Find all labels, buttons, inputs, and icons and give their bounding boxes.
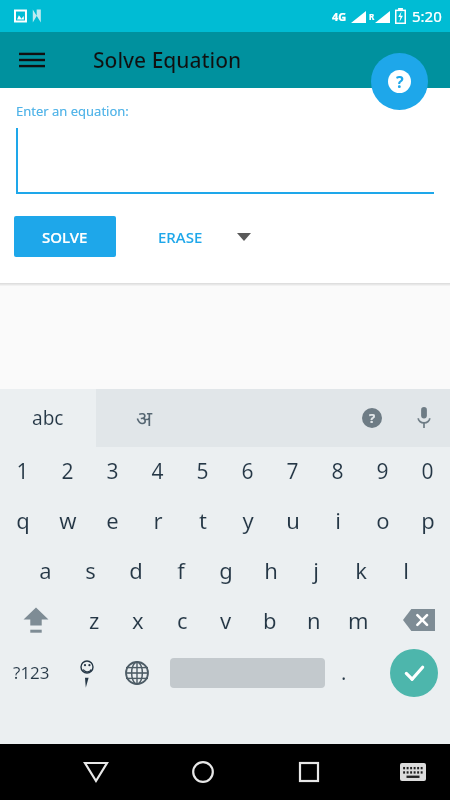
staticText: i <box>335 505 341 535</box>
staticText: 4 <box>151 457 164 486</box>
staticText: e <box>106 505 119 535</box>
staticText: 5:20 <box>412 6 442 26</box>
staticText: ?123 <box>13 661 50 684</box>
button[interactable]: 9 <box>360 447 405 495</box>
staticText: l <box>403 555 409 585</box>
button[interactable]: 3 <box>90 447 135 495</box>
staticText: ERASE <box>158 227 203 247</box>
staticText: b <box>263 605 277 635</box>
staticText: 5 <box>196 457 209 486</box>
button[interactable]: w <box>45 495 90 545</box>
button[interactable]: x <box>116 595 160 645</box>
staticText: k <box>355 555 367 585</box>
staticText: m <box>348 605 369 635</box>
button[interactable]: h <box>248 545 293 595</box>
button[interactable]: Recent apps <box>283 746 335 798</box>
staticText: x <box>132 605 144 635</box>
staticText: ? <box>396 71 404 93</box>
button[interactable]: p <box>405 495 450 545</box>
button[interactable]: Open navigation menu <box>12 40 52 80</box>
button[interactable]: ?123 <box>0 645 62 700</box>
staticText: u <box>286 505 300 535</box>
button[interactable]: Home <box>177 746 229 798</box>
button[interactable]: g <box>203 545 248 595</box>
staticText: abc <box>32 405 64 431</box>
button[interactable]: 4 <box>135 447 180 495</box>
button[interactable]: q <box>0 495 45 545</box>
button[interactable]: Hide keyboard <box>70 746 122 798</box>
button[interactable]: c <box>160 595 204 645</box>
staticText: . <box>341 659 347 686</box>
staticText: R <box>369 11 375 22</box>
button[interactable]: Change keyboard language <box>112 645 162 700</box>
button[interactable]: abc <box>0 389 96 447</box>
staticText: g <box>219 555 233 585</box>
button[interactable]: n <box>292 595 336 645</box>
button[interactable]: f <box>158 545 203 595</box>
button[interactable]: a <box>22 545 68 595</box>
staticText: p <box>421 505 435 535</box>
staticText: y <box>242 505 254 535</box>
button[interactable]: Keyboard help <box>346 389 398 447</box>
staticText: v <box>220 605 232 635</box>
staticText: 3 <box>106 457 119 486</box>
button[interactable]: b <box>248 595 292 645</box>
staticText: 4G <box>332 9 347 24</box>
staticText: j <box>313 555 319 585</box>
button[interactable]: 0 <box>405 447 450 495</box>
button[interactable]: Enter <box>390 649 438 697</box>
button[interactable]: More options <box>222 216 266 257</box>
button[interactable]: z <box>72 595 116 645</box>
staticText: 1 <box>16 457 29 486</box>
button[interactable]: अ <box>96 389 192 447</box>
button[interactable]: y <box>225 495 270 545</box>
button[interactable]: e <box>90 495 135 545</box>
button[interactable]: k <box>338 545 383 595</box>
staticText: 8 <box>331 457 344 486</box>
button[interactable]: v <box>204 595 248 645</box>
button[interactable]: 6 <box>225 447 270 495</box>
button[interactable]: m <box>336 595 380 645</box>
button[interactable]: Emoji and comma <box>62 645 112 700</box>
button[interactable]: i <box>315 495 360 545</box>
staticText: Solve Equation <box>93 46 242 75</box>
button[interactable]: 2 <box>45 447 90 495</box>
button[interactable]: r <box>135 495 180 545</box>
button[interactable]: Help <box>371 53 428 110</box>
staticText: a <box>39 555 52 585</box>
button[interactable]: Switch keyboard <box>390 749 436 795</box>
staticText: d <box>129 555 143 585</box>
button[interactable]: j <box>293 545 338 595</box>
staticText: r <box>153 505 163 535</box>
staticText: h <box>264 555 278 585</box>
button[interactable]: 1 <box>0 447 45 495</box>
button[interactable]: Voice input <box>398 389 450 447</box>
button[interactable]: Backspace <box>388 595 450 645</box>
staticText: q <box>16 505 30 535</box>
staticText: Enter an equation: <box>16 102 129 120</box>
staticText: o <box>376 505 390 535</box>
button[interactable]: 7 <box>270 447 315 495</box>
button[interactable]: Shift <box>0 595 72 645</box>
button[interactable]: l <box>383 545 428 595</box>
staticText: z <box>89 605 100 635</box>
button[interactable]: . <box>325 645 363 700</box>
button[interactable]: 5 <box>180 447 225 495</box>
button[interactable]: t <box>180 495 225 545</box>
button[interactable]: ERASE <box>138 216 222 257</box>
staticText: अ <box>136 404 153 433</box>
button[interactable]: o <box>360 495 405 545</box>
staticText: 0 <box>421 457 434 486</box>
staticText: 9 <box>376 457 389 486</box>
staticText: t <box>199 505 207 535</box>
staticText: ? <box>369 409 376 427</box>
button[interactable]: s <box>68 545 113 595</box>
button[interactable]: u <box>270 495 315 545</box>
button[interactable]: 8 <box>315 447 360 495</box>
staticText: s <box>85 555 96 585</box>
button[interactable]: SOLVE <box>14 216 116 257</box>
staticText: n <box>307 605 321 635</box>
staticText: w <box>59 505 77 535</box>
button[interactable]: d <box>113 545 158 595</box>
